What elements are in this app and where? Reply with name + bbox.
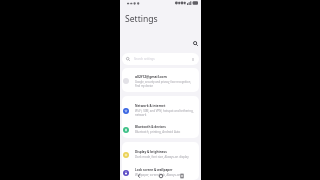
button[interactable]: Display & brightness: [122, 142, 199, 161]
button[interactable]: Bluetooth & devices: [122, 117, 199, 138]
button[interactable]: Network & internet: [122, 96, 199, 117]
staticText: Settings: [125, 13, 158, 25]
staticText: Wi-Fi, SIM, and VPN, hotspot and tetheri…: [135, 109, 197, 117]
button[interactable]: Back: [134, 171, 144, 180]
staticText: Dark mode, font size, Always-on display: [135, 155, 189, 159]
button[interactable]: Search settings: [122, 53, 199, 65]
staticText: Network & internet: [135, 104, 166, 108]
staticText: Lock screen & wallpaper: [135, 168, 173, 172]
button[interactable]: a02f12@gmail.com: [122, 68, 199, 92]
staticText: Search settings: [134, 57, 155, 61]
staticText: a02f12@gmail.com: [135, 74, 167, 79]
staticText: Google, security and privacy, face recog…: [135, 80, 191, 87]
staticText: Bluetooth & devices: [135, 125, 166, 129]
button[interactable]: Lock screen & wallpaper: [122, 161, 199, 180]
staticText: Bluetooth, printing, Android Auto: [135, 130, 181, 134]
button[interactable]: Home: [156, 171, 166, 180]
button[interactable]: Recent apps: [177, 171, 187, 180]
staticText: Display & brightness: [135, 150, 167, 154]
button[interactable]: Search: [190, 38, 201, 49]
staticText: Wallpaper, screen lock, Always-on: [135, 173, 181, 177]
